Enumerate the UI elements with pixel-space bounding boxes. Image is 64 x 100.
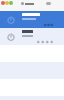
button[interactable]: Account xyxy=(46,2,51,5)
other: Power xyxy=(7,33,15,41)
button[interactable]: Power xyxy=(0,11,64,28)
button[interactable]: Power xyxy=(0,28,64,45)
other: Power xyxy=(7,16,15,24)
